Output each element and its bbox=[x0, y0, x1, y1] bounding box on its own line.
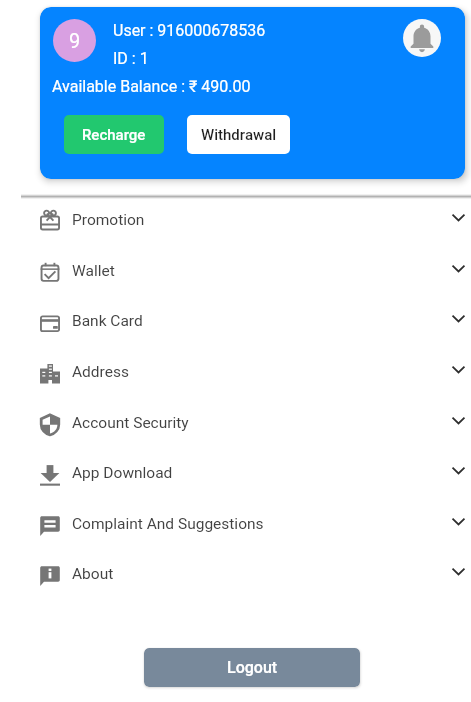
staticText: App Download bbox=[72, 464, 173, 482]
staticText: Recharge bbox=[82, 126, 146, 144]
button[interactable]: Promotion bbox=[0, 195, 471, 245]
button[interactable]: Bank Card bbox=[0, 296, 471, 346]
button[interactable]: Recharge bbox=[64, 115, 164, 154]
staticText: Available Balance : ₹ 490.00 bbox=[52, 77, 251, 96]
staticText: Address bbox=[72, 363, 129, 381]
button[interactable]: About bbox=[0, 549, 471, 599]
button[interactable]: Logout bbox=[144, 648, 360, 687]
staticText: User : 916000678536 bbox=[113, 21, 266, 40]
button[interactable]: Address bbox=[0, 347, 471, 397]
staticText: Promotion bbox=[72, 211, 145, 229]
staticText: Complaint And Suggestions bbox=[72, 515, 264, 533]
staticText: Logout bbox=[227, 658, 278, 677]
button[interactable]: Wallet bbox=[0, 246, 471, 296]
staticText: 9 bbox=[69, 29, 81, 52]
button[interactable]: Notifications bbox=[403, 19, 441, 57]
staticText: Withdrawal bbox=[201, 126, 277, 144]
button[interactable]: App Download bbox=[0, 448, 471, 498]
staticText: About bbox=[72, 565, 114, 583]
staticText: ID : 1 bbox=[113, 49, 149, 68]
button[interactable]: Complaint And Suggestions bbox=[0, 499, 471, 549]
staticText: Bank Card bbox=[72, 312, 143, 330]
button[interactable]: Account Security bbox=[0, 398, 471, 448]
button[interactable]: Withdrawal bbox=[187, 115, 290, 154]
staticText: Wallet bbox=[72, 262, 115, 280]
staticText: Account Security bbox=[72, 414, 189, 432]
